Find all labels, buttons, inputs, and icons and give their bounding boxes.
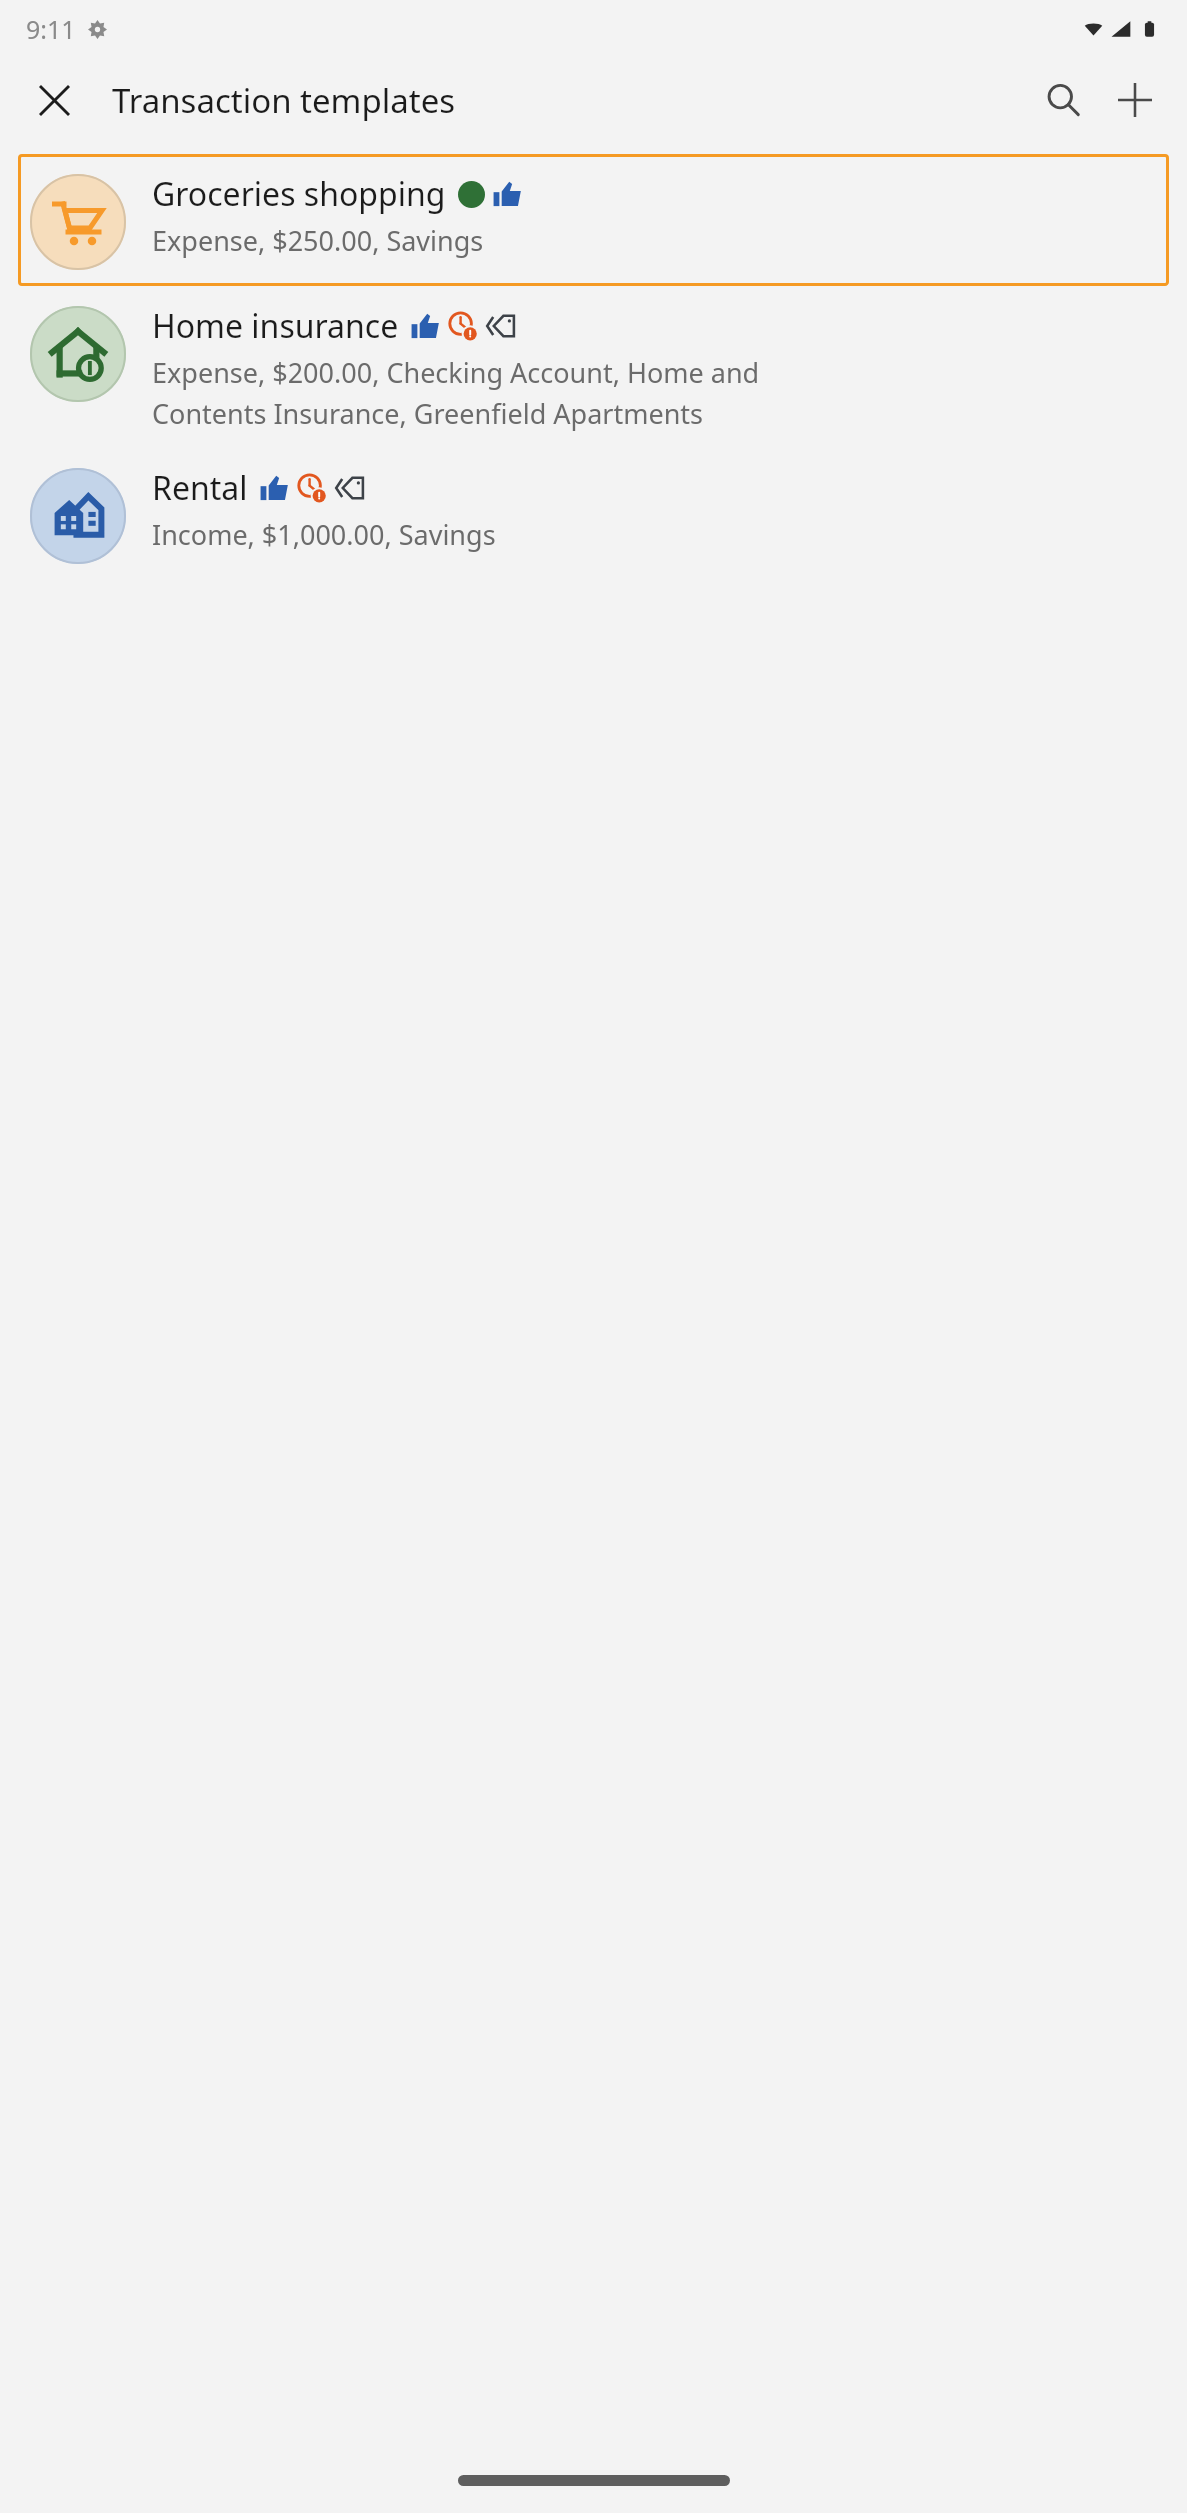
staticText: Income, $1,000.00, Savings — [152, 516, 496, 553]
staticText: Rental — [152, 466, 248, 510]
button[interactable]: Home insurance — [18, 286, 1169, 448]
staticText: Home insurance — [152, 304, 399, 348]
staticText: Contents Insurance, Greenfield Apartment… — [152, 395, 704, 432]
button[interactable]: Add template — [1099, 64, 1171, 136]
staticText: 9:11 — [26, 12, 76, 46]
staticText: Expense, $200.00, Checking Account, Home… — [152, 354, 760, 391]
staticText: Transaction templates — [112, 78, 456, 123]
button[interactable]: Close — [26, 72, 82, 128]
button[interactable]: Search — [1027, 64, 1099, 136]
staticText: Expense, $250.00, Savings — [152, 222, 484, 259]
button[interactable]: Groceries shopping — [18, 154, 1169, 286]
staticText: Groceries shopping — [152, 172, 446, 216]
button[interactable]: Rental — [18, 448, 1169, 580]
